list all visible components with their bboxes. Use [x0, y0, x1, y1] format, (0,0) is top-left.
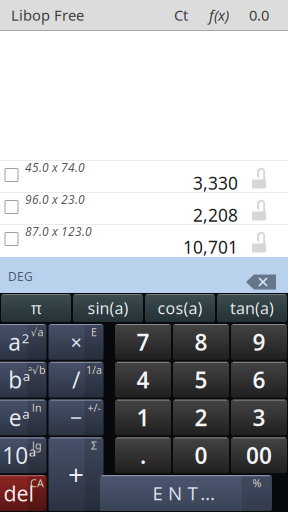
staticText: ENTER	[152, 481, 219, 505]
staticText: 1	[136, 402, 149, 432]
button[interactable]: del	[0, 474, 57, 512]
button[interactable]: 0.0	[239, 0, 279, 30]
button[interactable]: −	[57, 399, 114, 436]
staticText: a	[29, 442, 36, 460]
staticText: +/-	[87, 400, 100, 415]
staticText: ×	[70, 329, 81, 355]
staticText: 96.0 x 23.0	[25, 191, 85, 207]
staticText: 2	[22, 329, 30, 347]
staticText: sin(a)	[87, 297, 128, 319]
staticText: 3,330	[193, 171, 238, 194]
staticText: lg	[32, 438, 42, 452]
button[interactable]: a	[0, 323, 57, 361]
button[interactable]: cos(a)	[144, 293, 216, 323]
button[interactable]: 3	[230, 399, 288, 436]
staticText: del	[3, 479, 34, 507]
button[interactable]: 00	[230, 436, 288, 474]
staticText: tan(a)	[230, 297, 274, 319]
staticText: %	[252, 476, 261, 490]
staticText: 9	[252, 327, 265, 357]
staticText: +	[68, 456, 84, 493]
staticText: −	[70, 403, 82, 432]
staticText: 00	[246, 440, 272, 470]
staticText: e	[9, 402, 22, 432]
staticText: f(x)	[209, 5, 229, 25]
staticText: 45.0 x 74.0	[25, 159, 85, 175]
button[interactable]: 0	[172, 436, 230, 474]
button[interactable]: ×	[57, 323, 114, 361]
button[interactable]: 4	[114, 361, 172, 399]
button[interactable]: 45.0 x 74.0	[0, 160, 288, 192]
button[interactable]: e	[0, 399, 57, 436]
staticText: cos(a)	[157, 297, 202, 319]
staticText: 5	[194, 365, 207, 395]
staticText: E	[91, 325, 97, 339]
staticText: Ct	[174, 5, 188, 25]
button[interactable]: Ct	[163, 0, 199, 30]
button[interactable]: 1	[114, 399, 172, 436]
button[interactable]: .	[114, 436, 172, 474]
staticText: 10,701	[183, 235, 238, 258]
staticText: 3	[252, 402, 265, 432]
staticText: 1/a	[86, 363, 102, 377]
button[interactable]: +	[57, 436, 114, 512]
button[interactable]: ENTER	[114, 474, 288, 512]
staticText: 0.0	[249, 5, 269, 25]
staticText: π	[31, 297, 41, 319]
staticText: Libop Free	[11, 5, 84, 25]
staticText: .	[140, 440, 146, 470]
staticText: √a	[30, 325, 43, 339]
button[interactable]: 7	[114, 323, 172, 361]
staticText: 2	[194, 402, 207, 432]
button[interactable]: 9	[230, 323, 288, 361]
staticText: a	[8, 327, 21, 357]
staticText: 6	[252, 365, 265, 395]
button[interactable]: 5	[172, 361, 230, 399]
staticText: CA	[30, 476, 44, 490]
staticText: 87.0 x 123.0	[25, 223, 92, 239]
staticText: a	[22, 405, 29, 422]
button[interactable]: 8	[172, 323, 230, 361]
button[interactable]: 87.0 x 123.0	[0, 224, 288, 256]
staticText: 7	[136, 327, 149, 357]
staticText: Σ	[91, 438, 97, 452]
button[interactable]: b	[0, 361, 57, 399]
button[interactable]: Backspace	[246, 274, 276, 289]
button[interactable]: f(x)	[199, 0, 239, 30]
staticText: 10	[2, 440, 28, 470]
staticText: b	[8, 365, 22, 395]
staticText: DEG	[8, 268, 33, 284]
button[interactable]: 10	[0, 436, 57, 474]
staticText: /	[72, 365, 80, 395]
staticText: ᵃ√b	[28, 363, 46, 377]
button[interactable]: tan(a)	[216, 293, 288, 323]
button[interactable]: π	[0, 293, 72, 323]
button[interactable]: sin(a)	[72, 293, 144, 323]
staticText: 4	[136, 365, 149, 395]
button[interactable]: 2	[172, 399, 230, 436]
staticText: 2,208	[193, 203, 238, 226]
button[interactable]: 96.0 x 23.0	[0, 192, 288, 224]
staticText: 8	[194, 327, 207, 357]
staticText: ln	[32, 400, 42, 415]
staticText: 0	[194, 440, 207, 470]
button[interactable]: /	[57, 361, 114, 399]
button[interactable]: 6	[230, 361, 288, 399]
staticText: a	[23, 367, 30, 385]
